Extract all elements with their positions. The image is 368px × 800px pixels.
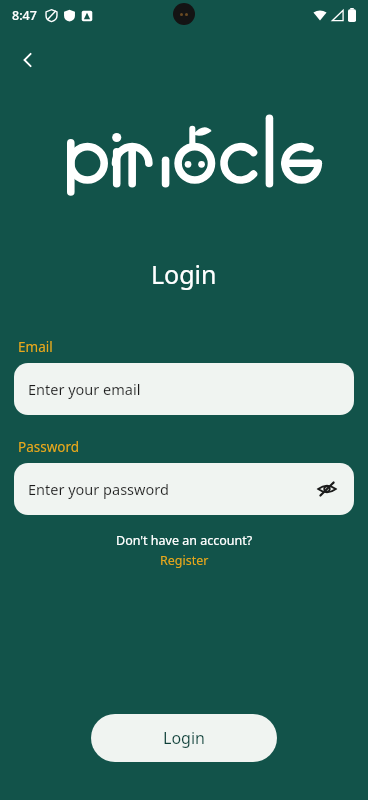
staticText: Email xyxy=(18,338,53,356)
button[interactable]: Login xyxy=(91,714,277,762)
button[interactable]: Enter your email xyxy=(14,363,354,415)
staticText: Login xyxy=(151,257,217,291)
button[interactable]: Enter your password xyxy=(14,463,354,515)
staticText: Enter your email xyxy=(28,379,141,399)
staticText: Login xyxy=(163,727,205,749)
button[interactable]: Back xyxy=(8,40,48,80)
staticText: Don't have an account? xyxy=(116,532,253,549)
staticText: Password xyxy=(18,438,80,456)
staticText: Register xyxy=(160,552,209,569)
staticText: Enter your password xyxy=(28,479,169,499)
button[interactable]: Show password xyxy=(310,472,344,506)
staticText: 8:47 xyxy=(12,7,37,24)
button[interactable]: Register xyxy=(156,551,213,570)
